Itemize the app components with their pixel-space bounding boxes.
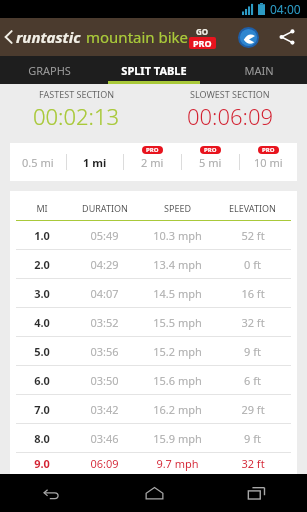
staticText: 1.0 bbox=[34, 228, 50, 243]
staticText: 7.0 bbox=[34, 402, 50, 417]
button[interactable]: 10 mi bbox=[240, 143, 297, 181]
button[interactable]: 6.0 bbox=[10, 366, 297, 394]
button[interactable]: Recent apps bbox=[205, 474, 307, 512]
button[interactable]: Home bbox=[103, 474, 205, 512]
button[interactable]: 4.0 bbox=[10, 308, 297, 336]
button[interactable]: 1.0 bbox=[10, 221, 297, 249]
staticText: 14.5 mph bbox=[153, 286, 202, 301]
staticText: SPEED bbox=[164, 202, 191, 214]
staticText: PRO bbox=[193, 37, 212, 49]
button[interactable]: Share bbox=[275, 25, 299, 49]
button[interactable]: 3.0 bbox=[10, 279, 297, 307]
staticText: 29 ft bbox=[241, 402, 265, 417]
staticText: 10 mi bbox=[254, 155, 283, 170]
staticText: 15.6 mph bbox=[153, 373, 202, 388]
staticText: GRAPHS bbox=[28, 63, 71, 78]
staticText: 9 ft bbox=[244, 344, 261, 359]
staticText: 5 mi bbox=[199, 155, 222, 170]
staticText: runtastic bbox=[16, 27, 81, 47]
staticText: MAIN bbox=[244, 63, 274, 78]
staticText: 03:52 bbox=[90, 315, 119, 330]
button[interactable]: 0.5 mi bbox=[10, 143, 66, 181]
staticText: 8.0 bbox=[34, 431, 50, 446]
staticText: 15.9 mph bbox=[153, 431, 202, 446]
staticText: 04:29 bbox=[90, 257, 119, 272]
button[interactable]: 1 mi bbox=[67, 143, 123, 181]
staticText: SPLIT TABLE bbox=[121, 63, 187, 78]
staticText: GO bbox=[196, 26, 209, 37]
staticText: 15.2 mph bbox=[153, 344, 202, 359]
staticText: PRO bbox=[262, 146, 275, 154]
staticText: 15.5 mph bbox=[153, 315, 202, 330]
button[interactable]: SPLIT TABLE bbox=[98, 56, 210, 84]
button[interactable]: 8.0 bbox=[10, 424, 297, 452]
staticText: DURATION bbox=[82, 202, 128, 214]
staticText: 9.7 mph bbox=[156, 456, 199, 471]
staticText: 5.0 bbox=[34, 344, 50, 359]
button[interactable]: 2.0 bbox=[10, 250, 297, 278]
staticText: 0 ft bbox=[244, 257, 261, 272]
staticText: 2.0 bbox=[34, 257, 50, 272]
staticText: 00:06:09 bbox=[187, 101, 274, 131]
button[interactable]: Back bbox=[0, 27, 189, 47]
staticText: 04:00 bbox=[270, 1, 301, 17]
staticText: mountain bike bbox=[86, 27, 189, 47]
button[interactable]: 9.0 bbox=[10, 453, 297, 474]
staticText: 2 mi bbox=[141, 155, 164, 170]
staticText: PRO bbox=[204, 146, 217, 154]
staticText: 16.2 mph bbox=[153, 402, 202, 417]
staticText: 04:07 bbox=[90, 286, 119, 301]
staticText: 03:46 bbox=[90, 431, 119, 446]
staticText: 10.3 mph bbox=[153, 228, 202, 243]
staticText: MI bbox=[36, 202, 48, 214]
staticText: PRO bbox=[146, 146, 159, 154]
staticText: 00:02:13 bbox=[33, 101, 120, 131]
button[interactable]: Map bbox=[235, 24, 261, 50]
staticText: 52 ft bbox=[241, 228, 265, 243]
staticText: 03:42 bbox=[90, 402, 119, 417]
button[interactable]: 2 mi bbox=[124, 143, 181, 181]
staticText: SLOWEST SECTION bbox=[190, 88, 270, 100]
staticText: 1 mi bbox=[83, 155, 107, 170]
staticText: FASTEST SECTION bbox=[39, 88, 115, 100]
staticText: ELEVATION bbox=[229, 202, 276, 214]
staticText: 9 ft bbox=[244, 431, 261, 446]
staticText: 03:50 bbox=[90, 373, 119, 388]
staticText: 32 ft bbox=[241, 456, 265, 471]
other: Back bbox=[4, 30, 13, 44]
staticText: 05:49 bbox=[90, 228, 119, 243]
staticText: 9.0 bbox=[34, 456, 50, 471]
staticText: 0.5 mi bbox=[22, 155, 54, 170]
button[interactable]: 5.0 bbox=[10, 337, 297, 365]
staticText: 4.0 bbox=[34, 315, 50, 330]
staticText: 16 ft bbox=[241, 286, 265, 301]
staticText: 32 ft bbox=[241, 315, 265, 330]
button[interactable]: 7.0 bbox=[10, 395, 297, 423]
staticText: 6.0 bbox=[34, 373, 50, 388]
button[interactable]: 5 mi bbox=[182, 143, 239, 181]
button[interactable]: GO bbox=[186, 26, 219, 49]
staticText: 13.4 mph bbox=[153, 257, 202, 272]
button[interactable]: GRAPHS bbox=[0, 56, 98, 84]
button[interactable]: Back bbox=[0, 474, 103, 512]
button[interactable]: MAIN bbox=[210, 56, 307, 84]
staticText: 03:56 bbox=[90, 344, 119, 359]
staticText: 3.0 bbox=[34, 286, 50, 301]
staticText: 06:09 bbox=[90, 456, 119, 471]
staticText: 6 ft bbox=[244, 373, 261, 388]
